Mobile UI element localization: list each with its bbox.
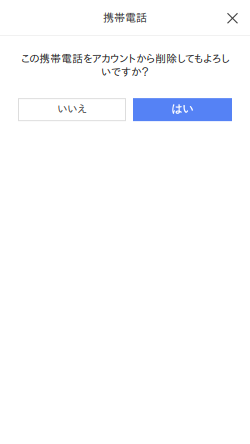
- staticText: いいえ: [57, 103, 86, 114]
- staticText: 携帯電話: [103, 12, 147, 23]
- staticText: はい: [171, 102, 193, 115]
- button[interactable]: いいえ: [18, 98, 126, 121]
- button[interactable]: はい: [133, 98, 232, 121]
- staticText: この携帯電話をアカウントから削除してもよろしいですか？: [21, 53, 229, 77]
- button[interactable]: Close: [221, 6, 243, 28]
